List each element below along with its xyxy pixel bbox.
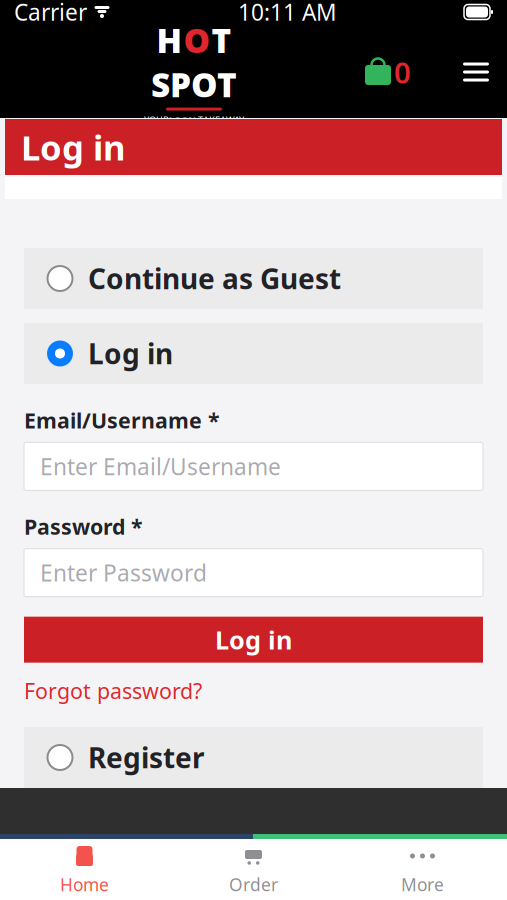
staticText: Register xyxy=(88,739,205,776)
button[interactable]: Enter Password xyxy=(24,549,483,597)
button[interactable]: Log in xyxy=(24,323,483,384)
staticText: Forgot password? xyxy=(24,677,202,705)
staticText: Email/Username * xyxy=(24,406,220,434)
staticText: T xyxy=(211,18,231,62)
staticText: Continue as Guest xyxy=(88,260,341,297)
staticText: H xyxy=(156,18,182,62)
button[interactable]: Log in xyxy=(24,617,483,663)
staticText: LOCAL xyxy=(169,114,198,126)
staticText: 10:11 AM xyxy=(238,0,337,27)
staticText: Enter Email/Username xyxy=(40,451,281,481)
staticText: Log in xyxy=(215,623,292,656)
button[interactable]: Menu xyxy=(455,54,497,89)
button[interactable]: Home xyxy=(0,839,169,900)
button[interactable]: Enter Email/Username xyxy=(24,442,483,490)
staticText: Order xyxy=(229,873,278,896)
button[interactable]: More xyxy=(338,839,507,900)
button[interactable]: Forgot password? xyxy=(24,673,202,709)
staticText: Log in xyxy=(88,335,173,372)
staticText: O xyxy=(183,18,210,62)
button[interactable]: Order xyxy=(169,839,338,900)
staticText: Home xyxy=(60,873,109,896)
staticText: TAKEAWAY xyxy=(198,114,244,126)
staticText: Password * xyxy=(24,512,143,541)
staticText: Enter Password xyxy=(40,558,207,588)
staticText: YOUR xyxy=(144,114,169,126)
button[interactable]: Continue as Guest xyxy=(24,248,483,309)
staticText: 0 xyxy=(394,52,411,91)
staticText: Carrier xyxy=(14,0,87,27)
staticText: Log in xyxy=(21,124,126,170)
button[interactable]: Basket, 0 items xyxy=(358,46,417,97)
button[interactable]: Register xyxy=(24,727,483,788)
staticText: More xyxy=(401,873,444,896)
staticText: SPOT xyxy=(151,62,237,107)
